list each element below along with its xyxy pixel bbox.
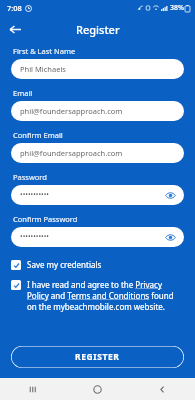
button[interactable]: phil@foundersapproach.com [11,143,184,163]
staticText: I have read and agree to the Privacy Pol… [27,279,184,312]
button[interactable]: Show password [164,231,177,244]
button[interactable]: Save my credentials [11,257,184,272]
staticText: phil@foundersapproach.com [20,148,177,158]
staticText: ••••••••••• [20,232,164,242]
button[interactable]: phil@foundersapproach.com [11,101,184,121]
button[interactable]: ••••••••••• [11,227,184,247]
button[interactable]: REGISTER [11,346,184,368]
button[interactable]: Back [4,18,26,40]
staticText: Password [13,172,47,182]
button[interactable]: ••••••••••• [11,185,184,205]
staticText: Email [13,88,33,98]
staticText: Phil Michaels [20,64,177,74]
staticText: 7:08 [7,3,22,13]
button[interactable]: Back [130,378,195,400]
button[interactable]: Recent apps [0,378,65,400]
staticText: phil@foundersapproach.com [20,106,177,116]
staticText: REGISTER [75,351,120,363]
button[interactable]: Home [65,378,130,400]
staticText: ••••••••••• [20,190,164,200]
staticText: Confirm Password [13,214,78,224]
button[interactable]: Phil Michaels [11,59,184,79]
staticText: Confirm Email [13,130,63,140]
staticText: 38% [170,3,184,13]
button[interactable]: Show password [164,189,177,202]
staticText: Save my credentials [27,259,102,270]
staticText: First & Last Name [13,46,76,56]
staticText: Register [76,22,120,37]
button[interactable]: I have read and agree to the Privacy Pol… [11,277,184,314]
